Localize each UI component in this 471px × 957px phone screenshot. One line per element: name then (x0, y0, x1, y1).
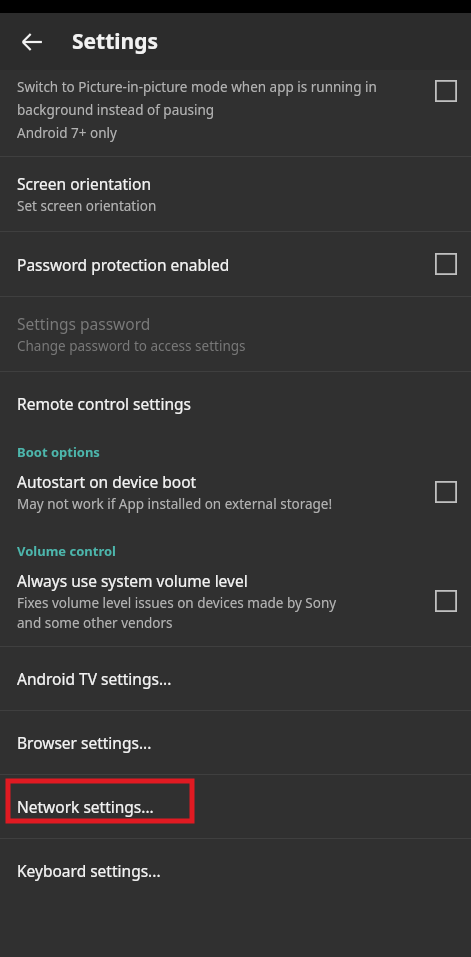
button[interactable]: Settings password (0, 297, 471, 371)
staticText: Remote control settings (17, 393, 192, 414)
button[interactable]: Browser settings... (0, 711, 471, 774)
button[interactable]: Network settings... (0, 775, 471, 838)
button[interactable]: Autostart on device boot (0, 467, 471, 527)
button[interactable]: Password protection enabled (0, 232, 471, 296)
staticText: Password protection enabled (17, 254, 230, 275)
staticText: Fixes volume level issues on devices mad… (17, 594, 337, 632)
staticText: Android TV settings... (17, 668, 172, 689)
staticText: Network settings... (17, 796, 154, 817)
staticText: Keyboard settings... (17, 860, 161, 881)
other: Autostart on device boot (435, 481, 457, 503)
staticText: May not work if App installed on externa… (17, 495, 333, 513)
staticText: Set screen orientation (17, 197, 157, 215)
staticText: Switch to Picture-in-picture mode when a… (17, 78, 423, 142)
other: Password protection enabled (435, 253, 457, 275)
button[interactable]: Android TV settings... (0, 647, 471, 710)
button[interactable]: Back (10, 20, 54, 64)
staticText: Boot options (17, 443, 100, 461)
button[interactable]: Keyboard settings... (0, 839, 471, 902)
staticText: Volume control (17, 542, 116, 560)
button[interactable]: Remote control settings (0, 372, 471, 428)
staticText: Settings (72, 27, 159, 56)
other: Picture-in-picture mode (435, 80, 457, 102)
staticText: Always use system volume level (17, 570, 248, 591)
button[interactable]: Screen orientation (0, 157, 471, 231)
staticText: Settings password (17, 313, 151, 334)
staticText: Browser settings... (17, 732, 152, 753)
button[interactable]: Always use system volume level (0, 566, 471, 646)
other: Always use system volume level (435, 590, 457, 612)
staticText: Screen orientation (17, 173, 152, 194)
staticText: Autostart on device boot (17, 471, 197, 492)
staticText: Change password to access settings (17, 337, 246, 355)
